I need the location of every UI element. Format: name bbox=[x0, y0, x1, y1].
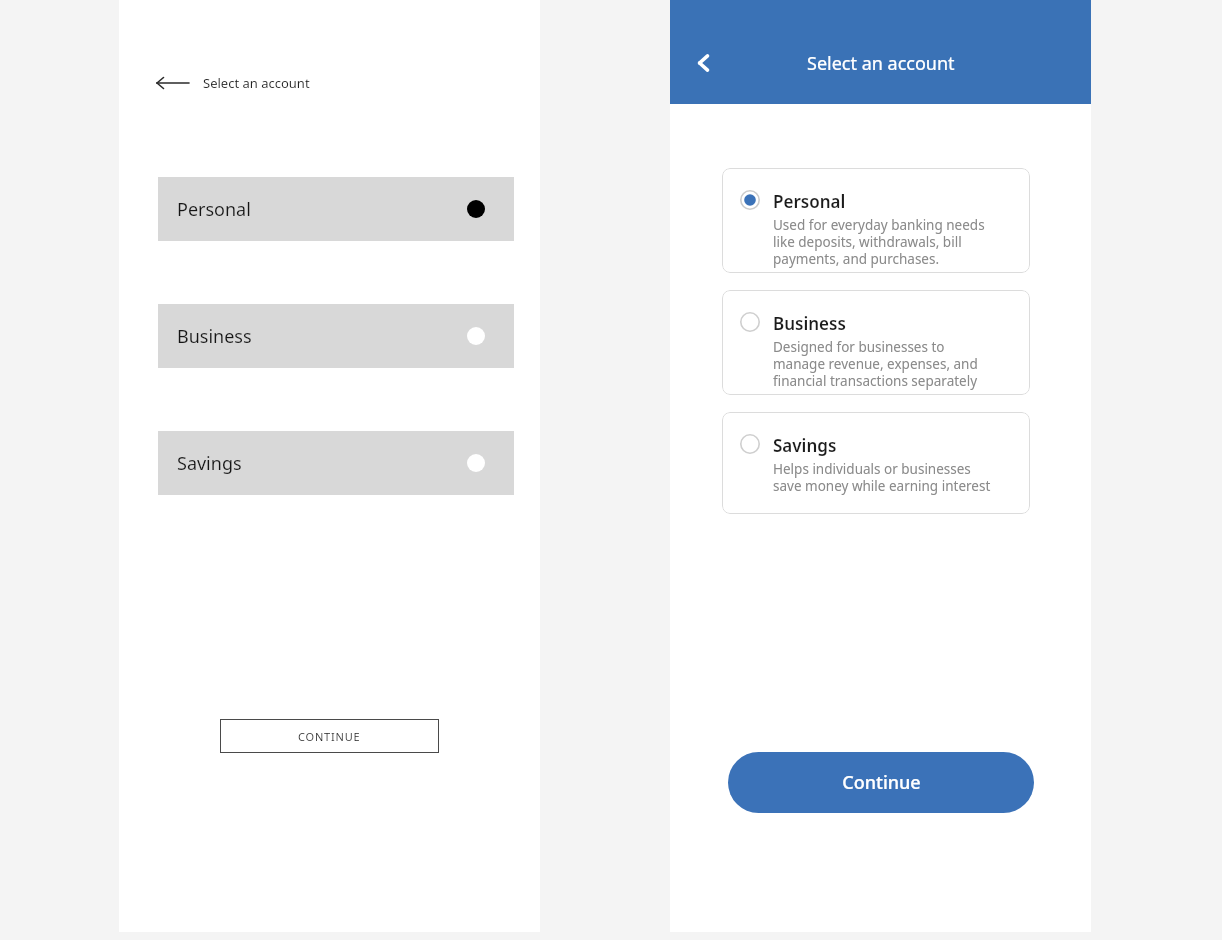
button[interactable]: Continue bbox=[728, 752, 1034, 813]
button[interactable]: Back bbox=[149, 68, 318, 98]
staticText: Business bbox=[177, 324, 252, 349]
staticText: Savings bbox=[177, 451, 242, 476]
other: Back bbox=[157, 75, 189, 91]
button[interactable]: Personal bbox=[722, 168, 1030, 273]
button[interactable]: Savings bbox=[722, 412, 1030, 514]
staticText: Select an account bbox=[203, 74, 310, 92]
button[interactable]: Savings bbox=[158, 431, 514, 495]
staticText: CONTINUE bbox=[298, 729, 361, 744]
button[interactable]: Business bbox=[158, 304, 514, 368]
staticText: Savings bbox=[773, 434, 837, 457]
button[interactable]: CONTINUE bbox=[220, 719, 439, 753]
staticText: Helps individuals or businesses save mon… bbox=[773, 460, 991, 495]
staticText: Personal bbox=[773, 190, 846, 213]
staticText: Business bbox=[773, 312, 846, 335]
button[interactable]: Back bbox=[684, 43, 724, 83]
staticText: Personal bbox=[177, 197, 251, 222]
button[interactable]: Personal bbox=[158, 177, 514, 241]
staticText: Select an account bbox=[807, 51, 955, 76]
staticText: Designed for businesses to manage revenu… bbox=[773, 338, 978, 390]
staticText: Used for everyday banking needs like dep… bbox=[773, 216, 985, 268]
staticText: Continue bbox=[842, 770, 921, 795]
button[interactable]: Business bbox=[722, 290, 1030, 395]
